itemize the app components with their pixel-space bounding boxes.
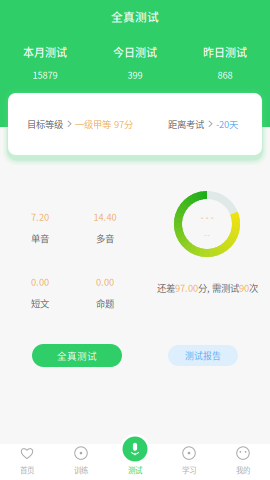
staticText: 距离考试	[168, 117, 204, 131]
staticText: 7.20	[31, 210, 49, 223]
staticText: - -	[204, 230, 209, 238]
staticText: 97.00	[175, 281, 198, 294]
staticText: 需测试	[212, 281, 239, 294]
staticText: 昨日测试	[203, 44, 247, 60]
staticText: 命题	[96, 296, 114, 310]
button[interactable]: 测试	[120, 434, 150, 464]
button[interactable]: 首页	[0, 444, 54, 480]
staticText: 目标等级	[27, 117, 63, 131]
button[interactable]: 学习	[162, 444, 216, 480]
staticText: 首页	[20, 465, 34, 475]
staticText: 97分	[114, 117, 133, 131]
staticText: 0.00	[31, 275, 49, 288]
staticText: -20天	[216, 117, 238, 131]
button[interactable]: 我的	[216, 444, 270, 480]
button[interactable]: 测试	[108, 444, 162, 480]
staticText: 次	[249, 281, 258, 294]
staticText: 15879	[32, 68, 57, 81]
staticText: 全真测试	[57, 348, 97, 362]
staticText: 0.00	[96, 275, 114, 288]
staticText: 测试	[128, 465, 142, 475]
staticText: 短文	[31, 296, 49, 310]
staticText: 868	[217, 68, 232, 81]
staticText: 399	[127, 68, 142, 81]
staticText: 训练	[74, 465, 88, 475]
staticText: 14.40	[93, 210, 116, 223]
button[interactable]: 全真测试	[32, 344, 122, 367]
staticText: 今日测试	[113, 44, 157, 60]
staticText: 测试报告	[185, 349, 221, 362]
staticText: 本月测试	[23, 44, 67, 60]
staticText: 一级甲等	[75, 117, 111, 131]
staticText: 全真测试	[111, 8, 159, 25]
staticText: 学习	[182, 465, 196, 475]
button[interactable]: 训练	[54, 444, 108, 480]
staticText: ,	[207, 281, 210, 294]
staticText: - - -	[200, 210, 213, 223]
staticText: 单音	[31, 231, 49, 245]
button[interactable]: 测试报告	[168, 345, 238, 366]
staticText: 多音	[96, 231, 114, 245]
staticText: 分	[198, 281, 207, 294]
staticText: 我的	[236, 465, 250, 475]
staticText: 还差	[157, 281, 175, 294]
staticText: 90	[239, 281, 249, 294]
